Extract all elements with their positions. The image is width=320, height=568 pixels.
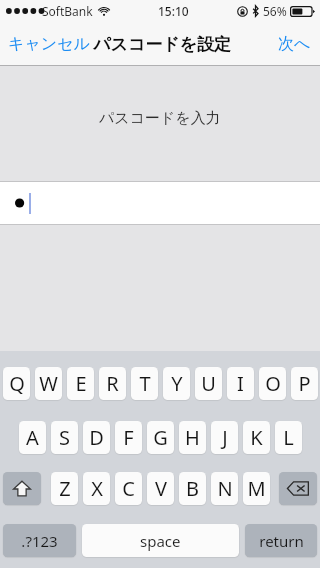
staticText: R: [106, 370, 119, 397]
button[interactable]: .?123: [3, 524, 76, 557]
button[interactable]: S: [51, 421, 78, 454]
button[interactable]: C: [115, 472, 142, 505]
button[interactable]: W: [35, 367, 62, 400]
staticText: C: [122, 475, 135, 502]
staticText: V: [155, 475, 167, 502]
button[interactable]: Y: [163, 367, 190, 400]
staticText: H: [185, 424, 200, 451]
button[interactable]: U: [195, 367, 222, 400]
button[interactable]: return: [245, 524, 317, 557]
button[interactable]: R: [99, 367, 126, 400]
button[interactable]: [0, 181, 320, 225]
staticText: X: [91, 475, 103, 502]
button[interactable]: I: [227, 367, 254, 400]
staticText: W: [39, 370, 58, 397]
staticText: Z: [59, 475, 71, 502]
button[interactable]: L: [275, 421, 302, 454]
staticText: パスコードを設定: [93, 34, 231, 55]
button[interactable]: D: [83, 421, 110, 454]
staticText: F: [123, 424, 134, 451]
button[interactable]: space: [82, 524, 239, 557]
staticText: K: [250, 424, 263, 451]
staticText: S: [59, 424, 70, 451]
staticText: キャンセル: [8, 34, 90, 54]
button[interactable]: T: [131, 367, 158, 400]
staticText: M: [247, 475, 266, 502]
button[interactable]: 次へ: [270, 25, 320, 63]
button[interactable]: M: [243, 472, 270, 505]
staticText: D: [89, 424, 104, 451]
staticText: .?123: [21, 531, 58, 551]
button[interactable]: Backspace: [279, 472, 317, 505]
button[interactable]: N: [211, 472, 238, 505]
staticText: O: [265, 370, 281, 397]
staticText: B: [186, 475, 199, 502]
button[interactable]: P: [291, 367, 318, 400]
button[interactable]: Shift: [3, 472, 41, 505]
staticText: I: [237, 370, 244, 397]
button[interactable]: E: [67, 367, 94, 400]
staticText: P: [298, 370, 311, 397]
staticText: space: [140, 531, 181, 551]
staticText: L: [283, 424, 294, 451]
staticText: J: [222, 424, 228, 451]
staticText: A: [26, 424, 39, 451]
button[interactable]: A: [19, 421, 46, 454]
staticText: T: [139, 370, 151, 397]
staticText: return: [259, 531, 304, 551]
button[interactable]: O: [259, 367, 286, 400]
button[interactable]: K: [243, 421, 270, 454]
button[interactable]: B: [179, 472, 206, 505]
button[interactable]: H: [179, 421, 206, 454]
button[interactable]: キャンセル: [0, 25, 93, 63]
staticText: G: [153, 424, 168, 451]
button[interactable]: J: [211, 421, 238, 454]
staticText: パスコードを入力: [99, 109, 221, 128]
staticText: Y: [171, 370, 183, 397]
staticText: N: [217, 475, 233, 502]
staticText: SoftBank: [42, 3, 93, 19]
button[interactable]: X: [83, 472, 110, 505]
staticText: U: [201, 370, 216, 397]
staticText: 次へ: [278, 34, 311, 54]
staticText: 56%: [263, 3, 287, 19]
button[interactable]: F: [115, 421, 142, 454]
staticText: Q: [9, 370, 25, 397]
staticText: 15:10: [158, 3, 189, 19]
button[interactable]: G: [147, 421, 174, 454]
button[interactable]: Z: [51, 472, 78, 505]
staticText: E: [75, 370, 87, 397]
button[interactable]: V: [147, 472, 174, 505]
button[interactable]: Q: [3, 367, 30, 400]
